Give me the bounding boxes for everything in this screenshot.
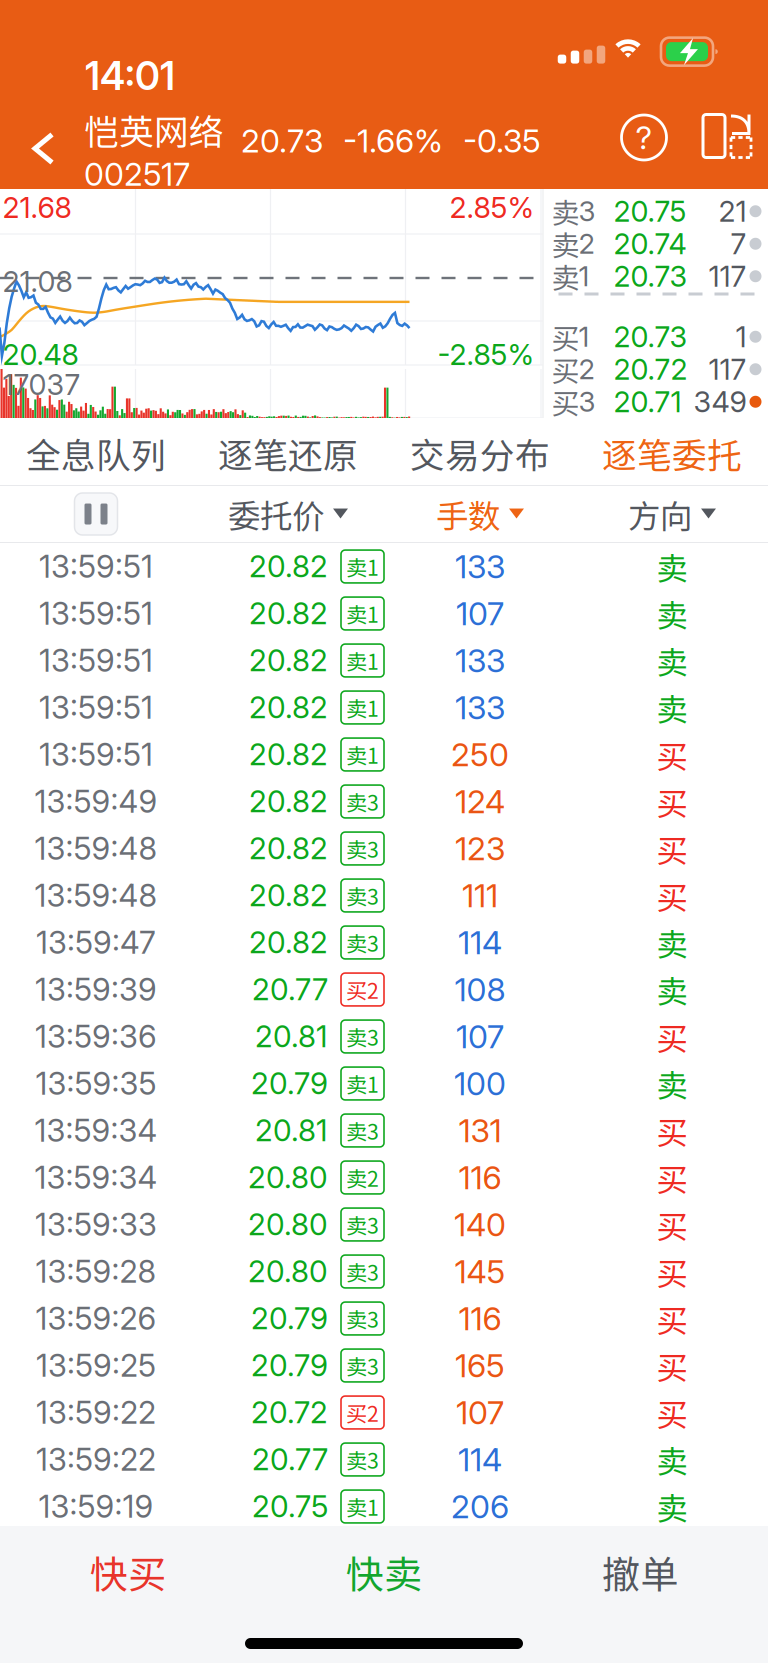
staticText: 20.82 [249,924,328,960]
staticText: 买 [551,316,579,357]
staticText: 100 [454,1064,506,1103]
staticText: 3 [578,194,595,228]
staticText: 2.85% [449,190,534,225]
staticText: 107 [456,594,504,633]
staticText: 20.82 [249,830,328,866]
staticText: 114 [458,923,502,962]
staticText: 买 [551,349,579,389]
staticText: 卖3 [346,833,379,864]
staticText: 13:59:22 [36,1394,156,1431]
staticText: 卖1 [346,598,379,629]
staticText: 13:59:22 [36,1441,156,1478]
staticText: 20.82 [249,548,328,584]
staticText: 133 [455,641,505,680]
staticText: 20.73 [613,319,687,354]
staticText: 20.82 [249,736,328,772]
staticText: 20.82 [249,689,328,725]
staticText: 交易分布 [410,428,550,478]
button[interactable]: 交易分布 [384,418,576,485]
staticText: 卖1 [346,551,379,582]
staticText: 买 [656,1014,687,1059]
staticText: 20.48 [2,337,78,372]
staticText: 13:59:33 [35,1206,157,1243]
staticText: 买 [656,779,687,824]
staticText: 14:01 [85,53,175,99]
staticText: 165 [455,1346,505,1385]
staticText: 20.72 [251,1394,328,1430]
staticText: 20.82 [249,783,328,819]
staticText: 卖 [551,256,579,296]
staticText: 123 [455,829,505,868]
button[interactable]: Help [614,107,674,167]
button[interactable]: 逐笔委托 [576,418,768,485]
staticText: 20.77 [252,971,328,1007]
staticText: 卖 [656,591,687,636]
staticText: 卖 [656,685,687,730]
staticText: 卖 [656,544,687,589]
staticText: 方向 [628,490,692,537]
staticText: -1.66% [343,121,443,160]
staticText: 108 [454,970,505,1009]
staticText: 114 [458,1440,502,1479]
button[interactable]: 逐笔还原 [192,418,384,485]
staticText: 13:59:49 [34,783,157,820]
staticText: 卖3 [346,1256,379,1287]
staticText: 206 [451,1487,509,1526]
staticText: 20.75 [613,194,686,229]
staticText: 20.82 [249,642,328,678]
staticText: 1 [578,259,589,293]
staticText: 快买 [90,1544,166,1599]
staticText: 20.79 [251,1065,328,1101]
staticText: 买 [551,381,579,422]
staticText: 买 [656,1390,687,1435]
button[interactable]: 委托价 [192,486,384,542]
staticText: 117 [708,259,746,294]
staticText: 逐笔还原 [218,428,358,478]
staticText: 13:59:39 [35,971,157,1008]
staticText: 卖 [656,967,687,1012]
staticText: 116 [458,1158,501,1197]
staticText: 21.08 [2,264,72,299]
button[interactable]: 撤单 [512,1526,768,1618]
button[interactable]: Back [17,116,71,180]
staticText: 133 [455,688,505,727]
staticText: 快卖 [346,1544,422,1599]
staticText: 7 [730,226,746,261]
staticText: 20.75 [252,1488,328,1524]
button[interactable]: Share [703,114,759,160]
staticText: 撤单 [602,1544,678,1599]
staticText: 买 [656,732,687,777]
staticText: 13:59:35 [35,1065,156,1102]
staticText: 20.80 [248,1253,328,1289]
staticText: 全息队列 [26,428,166,478]
staticText: 145 [454,1252,505,1291]
staticText: ? [635,118,652,157]
staticText: 委托价 [228,490,324,537]
staticText: 20.82 [249,595,328,631]
staticText: 116 [458,1299,501,1338]
staticText: 卖 [656,638,687,683]
button[interactable]: 方向 [576,486,768,542]
button[interactable]: 全息队列 [0,418,192,485]
staticText: 133 [455,547,505,586]
staticText: 13:59:47 [36,924,156,961]
staticText: 卖2 [346,1162,379,1193]
staticText: 13:59:51 [39,595,153,632]
button[interactable]: 快买 [0,1526,256,1618]
staticText: 250 [451,735,509,774]
staticText: 13:59:26 [35,1300,156,1337]
staticText: 20.79 [251,1347,328,1383]
staticText: 买2 [346,1397,379,1428]
staticText: 17037 [2,367,80,402]
button[interactable]: 手数 [384,486,576,542]
staticText: 3 [578,385,595,419]
staticText: 买 [656,873,687,918]
staticText: -2.85% [437,337,534,372]
staticText: 卖3 [346,786,379,817]
staticText: 002517 [84,155,190,193]
button[interactable]: 快卖 [256,1526,512,1618]
staticText: 卖 [551,223,579,264]
staticText: 卖 [656,1484,687,1529]
staticText: 卖3 [346,1303,379,1334]
button[interactable]: Pause [0,486,192,542]
